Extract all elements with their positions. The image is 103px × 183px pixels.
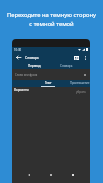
button[interactable]: Произношение [64, 80, 90, 87]
button[interactable]: Аккаунт [71, 53, 81, 63]
staticText: Варианты [14, 88, 29, 92]
button[interactable]: Недавние [68, 170, 78, 180]
button[interactable]: Главная [46, 170, 56, 180]
button[interactable]: Перевод [24, 63, 44, 69]
button[interactable]: Текст [32, 80, 64, 87]
button[interactable]: Назад [13, 52, 24, 63]
button[interactable]: Словарь [55, 63, 77, 69]
staticText: Произношение [70, 81, 90, 85]
staticText: убрать [76, 90, 86, 94]
staticText: Словарь [60, 64, 73, 68]
button[interactable]: Меню [81, 53, 90, 62]
staticText: Слово или фраза [15, 73, 38, 77]
staticText: Переходите на темную сторону с темной те… [0, 11, 103, 27]
staticText: Текст [45, 81, 52, 85]
staticText: Словарь [25, 55, 39, 60]
staticText: Перевод [28, 64, 41, 68]
button[interactable]: Назад [24, 170, 34, 180]
staticText: 10:30 [14, 48, 22, 52]
